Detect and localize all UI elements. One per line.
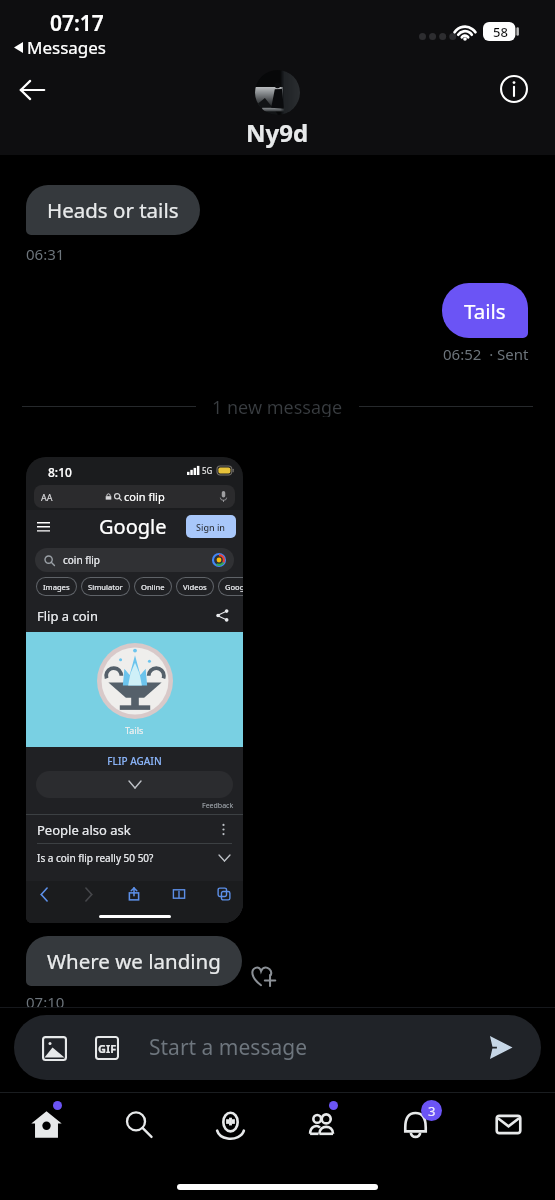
button[interactable]: Forward [82,888,95,901]
staticText: Messages [27,36,107,59]
button[interactable]: Add GIF [90,1031,124,1065]
staticText: FLIP AGAIN [26,754,243,768]
button[interactable]: Send [484,1030,518,1064]
staticText: 1 new message [212,395,343,417]
button[interactable]: Profile photo [255,70,300,115]
staticText: People also ask [37,821,131,839]
staticText: Tails [464,297,506,325]
button[interactable]: Notifications [369,1093,462,1155]
staticText: Online [141,582,165,592]
button[interactable]: Tabs [217,887,231,901]
staticText: Videos [183,582,207,592]
button[interactable]: Photo attachment [26,457,243,923]
staticText: Is a coin flip really 50 50? [37,851,154,865]
staticText: Feedback [202,801,234,811]
staticText: 06:52 · Sent [443,344,529,364]
button[interactable]: Back [8,66,56,114]
staticText: GIF [98,1041,117,1056]
button[interactable]: Sign in [186,515,236,538]
button[interactable]: Simulator [82,578,129,595]
button[interactable]: Online [135,578,171,595]
staticText: coin flip [63,553,100,567]
button[interactable]: coin flip [35,548,234,572]
staticText: Heads or tails [47,196,179,224]
button[interactable]: Heads or tails [26,185,200,235]
button[interactable]: Ny9d [246,116,309,149]
button[interactable] [36,771,233,798]
button[interactable]: Back [38,888,51,901]
staticText: Flip a coin [37,607,98,625]
button[interactable]: Add reaction [248,960,277,989]
staticText: 8:10 [48,464,72,480]
staticText: 58 [493,23,508,41]
staticText: Tails [125,724,144,736]
staticText: 3 [428,1102,436,1120]
staticText: AA [41,491,53,503]
button[interactable]: Google [219,578,243,595]
button[interactable]: Bookmarks [172,887,186,901]
staticText: Images [43,582,70,592]
staticText: Google [99,513,167,540]
button[interactable]: Spaces [184,1093,276,1155]
staticText: 07:10 [26,992,65,1012]
staticText: Google [225,582,243,592]
button[interactable]: Share [127,887,141,901]
button[interactable]: Images [37,578,76,595]
button[interactable]: Conversation info [490,65,538,113]
staticText: Simulator [88,582,123,592]
button[interactable]: Add photo [37,1031,71,1065]
button[interactable]: Search [92,1093,184,1155]
button[interactable]: Where we landing [26,936,242,986]
staticText: coin flip [124,489,165,504]
button[interactable]: Videos [177,578,213,595]
staticText: Where we landing [47,947,221,975]
staticText: Sign in [196,521,226,533]
button[interactable]: Tails [442,283,528,338]
button[interactable]: Home [0,1093,92,1155]
button[interactable]: Messages [462,1093,555,1155]
button[interactable]: Share [216,609,229,622]
staticText: 06:31 [26,244,65,264]
button[interactable]: Communities [276,1093,369,1155]
staticText: Start a message [149,1033,307,1062]
staticText: 5G [202,465,213,476]
staticText: 07:17 [50,9,104,38]
